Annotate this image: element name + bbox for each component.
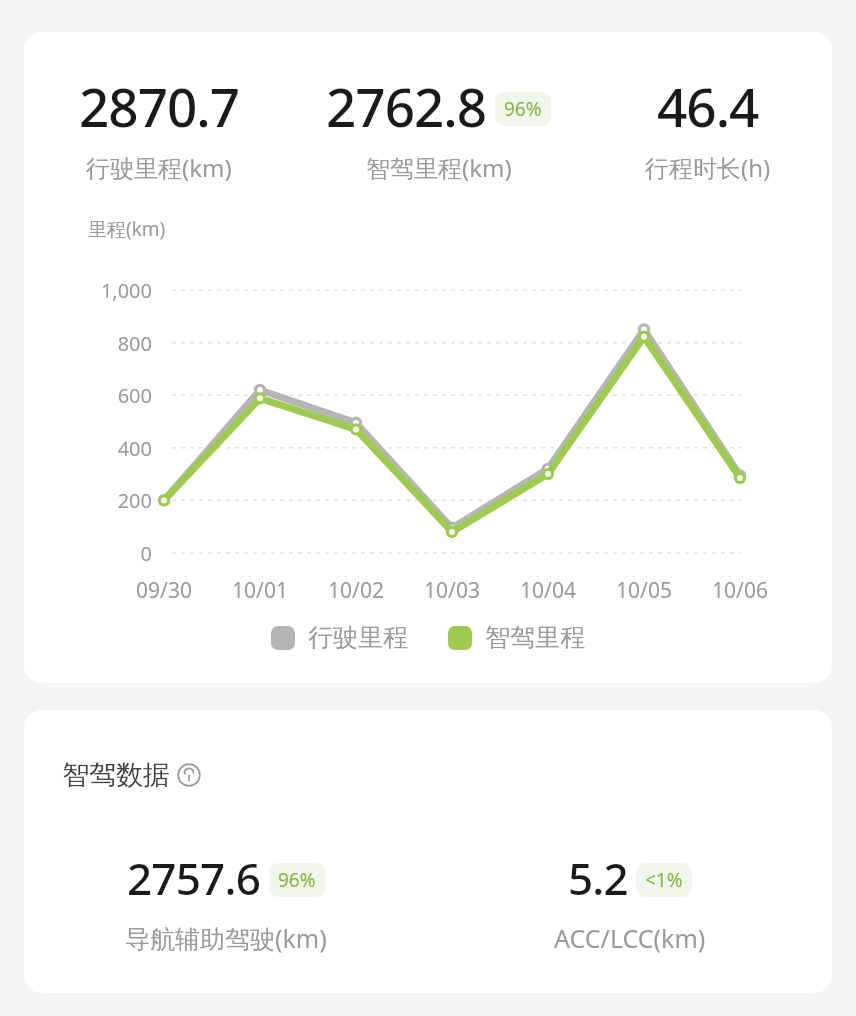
staticText: 2762.8: [326, 70, 486, 142]
button[interactable]: 智驾里程: [448, 622, 585, 653]
staticText: 行驶里程(km): [86, 151, 232, 184]
staticText: 200: [32, 487, 152, 514]
staticText: 10/06: [692, 576, 788, 605]
staticText: 智驾数据: [62, 758, 170, 792]
button[interactable]: 智驾数据 帮助: [62, 758, 201, 792]
staticText: 2870.7: [79, 70, 239, 142]
button[interactable]: 46.4: [584, 70, 832, 184]
staticText: 智驾里程: [485, 622, 585, 653]
staticText: 1,000: [32, 277, 152, 304]
staticText: 10/04: [500, 576, 596, 605]
button[interactable]: 5.2: [428, 848, 832, 955]
staticText: 智驾里程(km): [366, 151, 512, 184]
staticText: 800: [32, 330, 152, 357]
staticText: 600: [32, 382, 152, 409]
staticText: 导航辅助驾驶(km): [125, 921, 327, 955]
staticText: 96%: [278, 867, 316, 893]
staticText: 行程时长(h): [645, 151, 771, 184]
staticText: 10/05: [596, 576, 692, 605]
button[interactable]: 行驶里程: [271, 622, 408, 653]
staticText: 46.4: [657, 70, 759, 142]
staticText: 0: [32, 540, 152, 567]
staticText: 行驶里程: [308, 622, 408, 653]
staticText: 10/01: [212, 576, 308, 605]
staticText: 96%: [504, 96, 542, 122]
staticText: 09/30: [116, 576, 212, 605]
staticText: 400: [32, 435, 152, 462]
button[interactable]: 2762.8: [293, 70, 584, 184]
staticText: ACC/LCC(km): [554, 921, 706, 955]
staticText: 2757.6: [127, 848, 261, 908]
staticText: 里程(km): [88, 216, 166, 242]
staticText: 10/02: [308, 576, 404, 605]
staticText: 10/03: [404, 576, 500, 605]
button[interactable]: 2870.7: [24, 70, 293, 184]
button[interactable]: 2757.6: [24, 848, 428, 955]
staticText: <1%: [645, 867, 683, 893]
staticText: 5.2: [568, 848, 628, 908]
